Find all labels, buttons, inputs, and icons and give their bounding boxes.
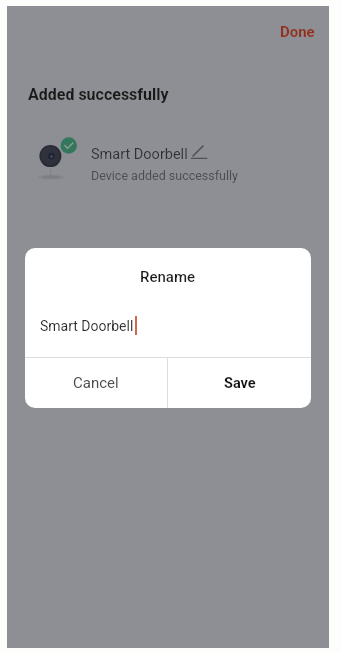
staticText: Cancel (73, 374, 119, 392)
staticText: Smart Doorbell (40, 318, 134, 334)
button[interactable]: Done (272, 17, 323, 47)
button[interactable]: Rename device (191, 144, 217, 168)
staticText: Device added successfully (91, 168, 238, 183)
staticText: Rename (140, 268, 196, 286)
staticText: Added successfully (28, 85, 169, 104)
staticText: Smart Doorbell (91, 146, 188, 163)
button[interactable]: Cancel (25, 358, 167, 408)
staticText: Done (280, 23, 315, 41)
button[interactable]: Save (168, 358, 311, 408)
staticText: Save (224, 375, 256, 392)
